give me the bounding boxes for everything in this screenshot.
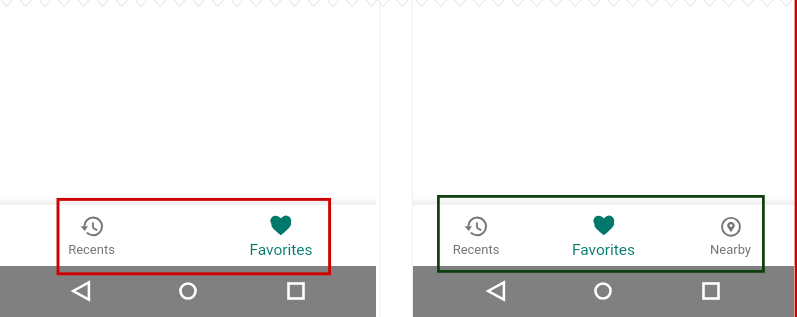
button[interactable]: Recents: [0, 205, 186, 266]
button[interactable]: Recent apps: [698, 278, 724, 304]
button[interactable]: Back: [483, 278, 509, 304]
button[interactable]: Favorites: [540, 205, 667, 266]
other: Favorites: [592, 214, 616, 238]
other: Favorites: [269, 214, 293, 238]
button[interactable]: Home: [175, 278, 201, 304]
staticText: Recents: [0, 242, 186, 257]
other: Recents: [464, 215, 488, 239]
staticText: Nearby: [667, 242, 794, 257]
other: Recents: [80, 215, 104, 239]
staticText: Favorites: [186, 241, 376, 259]
other: Nearby: [719, 215, 743, 239]
button[interactable]: Nearby: [667, 205, 794, 266]
button[interactable]: Home: [590, 278, 616, 304]
button[interactable]: Favorites: [186, 205, 376, 266]
button[interactable]: Back: [68, 278, 94, 304]
staticText: Favorites: [540, 241, 667, 259]
button[interactable]: Recents: [412, 205, 540, 266]
staticText: Recents: [412, 242, 540, 257]
button[interactable]: Recent apps: [283, 278, 309, 304]
